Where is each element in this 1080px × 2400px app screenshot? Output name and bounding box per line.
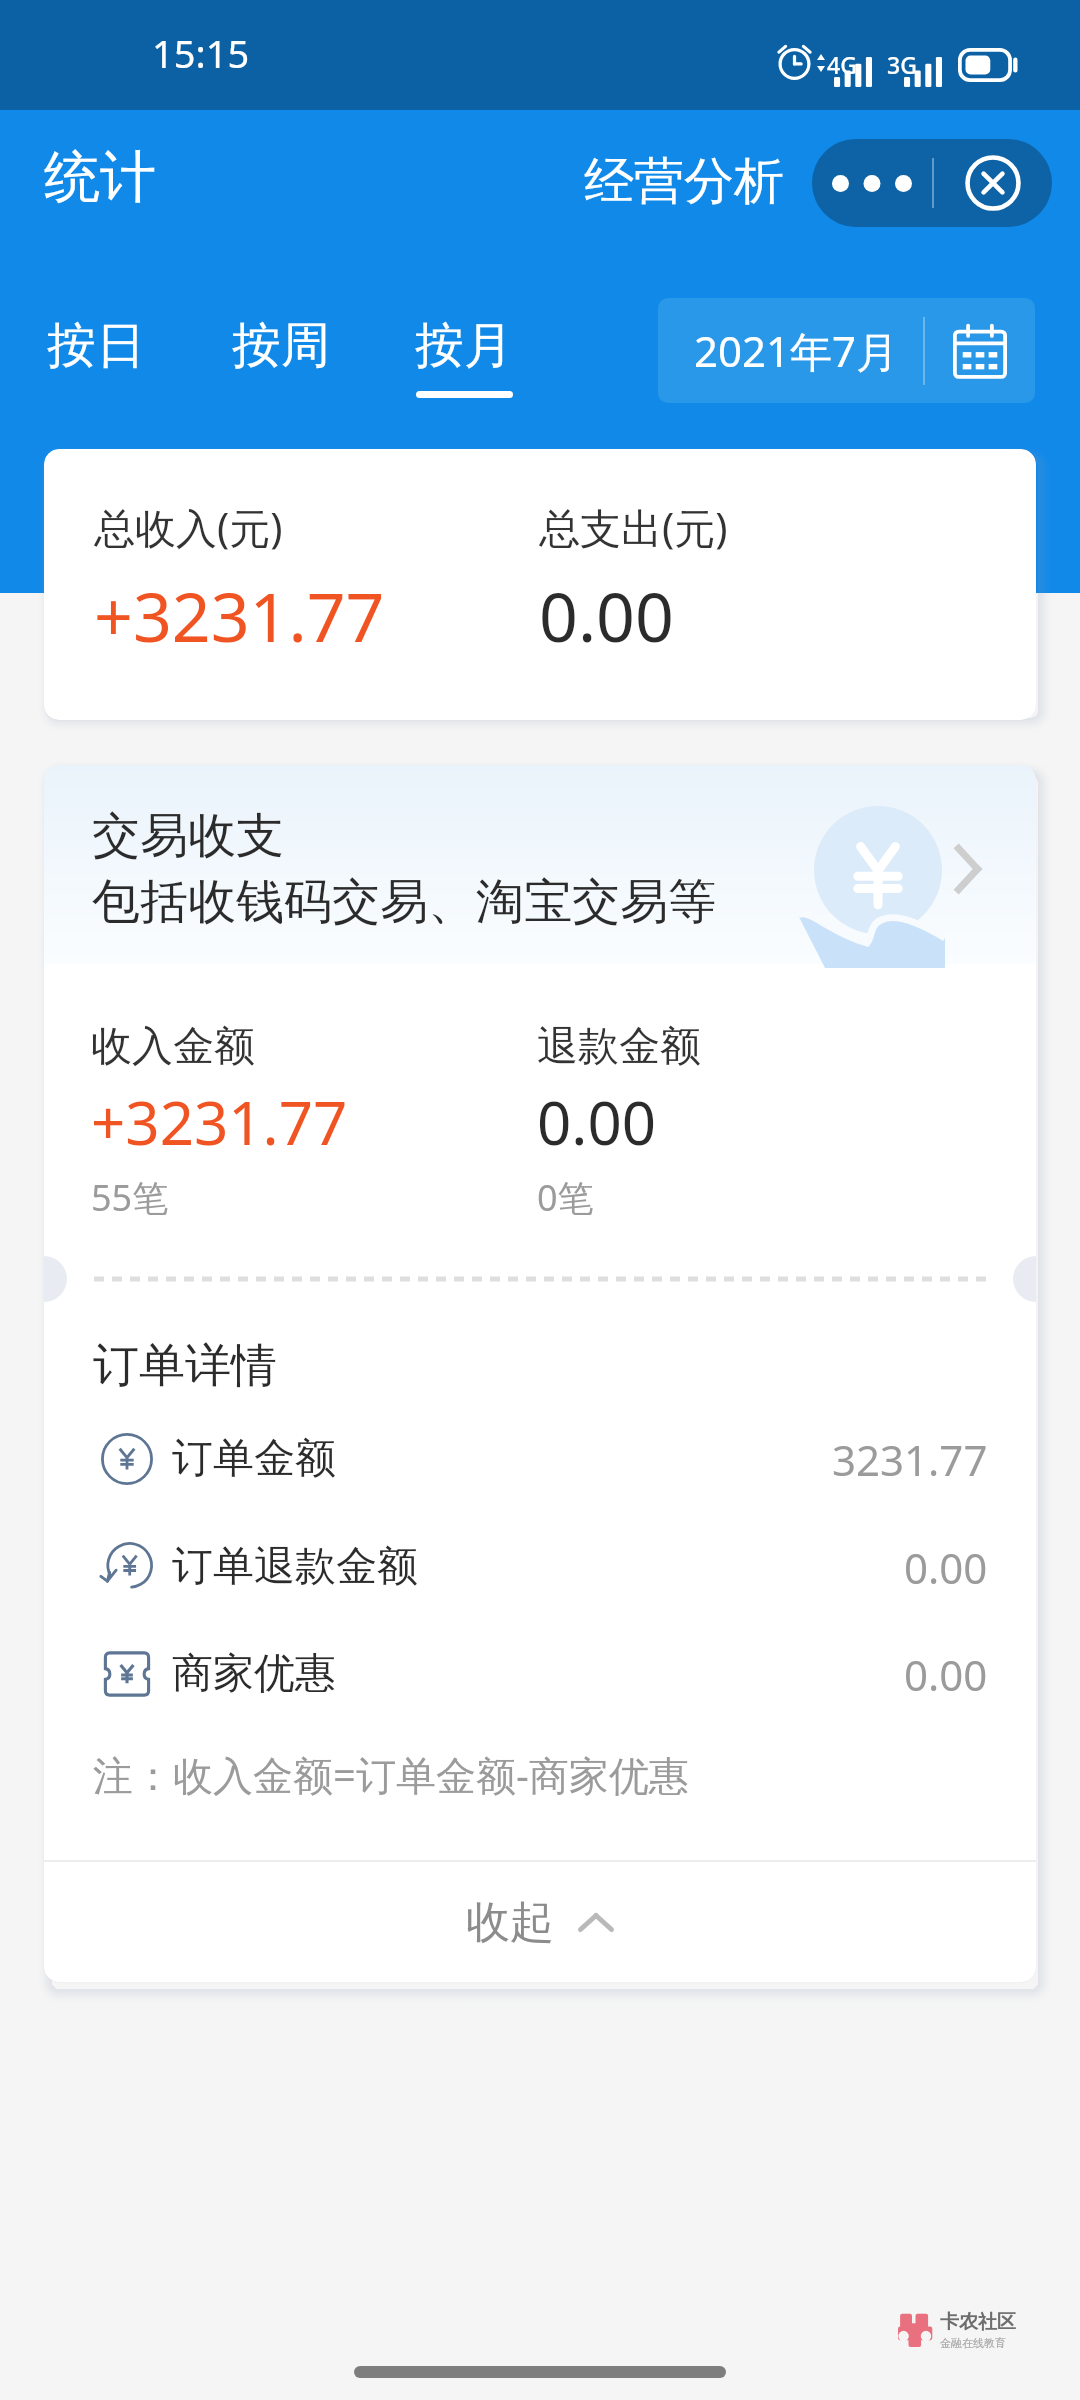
staticText: +3231.77	[91, 1081, 348, 1163]
staticText: 0.00	[904, 1539, 988, 1596]
button[interactable]: 收起	[44, 1862, 1036, 1982]
button[interactable]: 总收入(元)	[44, 449, 1036, 720]
button[interactable]: 交易收支	[44, 765, 1036, 964]
staticText: 按周	[232, 315, 330, 377]
button[interactable]: 订单退款金额	[44, 1513, 1036, 1621]
staticText: 包括收钱码交易、淘宝交易等	[92, 872, 716, 932]
staticText: 总支出(元)	[539, 499, 728, 555]
button[interactable]: 订单金额	[44, 1405, 1036, 1513]
other: Pick date	[953, 324, 1007, 378]
staticText: 按日	[47, 315, 145, 377]
staticText: 卡农社区	[940, 2310, 1016, 2334]
staticText: 按月	[415, 315, 513, 377]
staticText: 0.00	[537, 1081, 657, 1163]
button[interactable]: Close	[934, 139, 1052, 227]
staticText: 订单金额	[172, 1433, 336, 1485]
button[interactable]: More options	[812, 139, 932, 227]
staticText: 4G	[827, 49, 857, 80]
staticText: 订单退款金额	[172, 1541, 418, 1593]
staticText: 总收入(元)	[94, 499, 283, 555]
staticText: 0.00	[904, 1646, 988, 1703]
staticText: 0.00	[539, 569, 674, 662]
button[interactable]: 2021年7月	[658, 298, 1035, 403]
staticText: 收起	[466, 1895, 554, 1950]
staticText: 订单详情	[93, 1337, 277, 1395]
staticText: 商家优惠	[172, 1648, 336, 1700]
button[interactable]: 按月	[405, 315, 523, 398]
staticText: 2021年7月	[694, 322, 899, 379]
staticText: 统计	[44, 142, 156, 213]
staticText: 经营分析	[584, 150, 784, 213]
staticText: 金融在线教育	[940, 2336, 1006, 2350]
staticText: +3231.77	[94, 569, 385, 662]
staticText: 注：收入金额=订单金额-商家优惠	[93, 1747, 689, 1802]
button[interactable]: 按日	[37, 315, 155, 398]
staticText: 55笔	[91, 1173, 169, 1222]
button[interactable]: 商家优惠	[44, 1620, 1036, 1728]
staticText: 3G	[887, 49, 917, 80]
staticText: 交易收支	[92, 806, 284, 866]
staticText: 15:15	[152, 27, 250, 79]
staticText: 收入金额	[91, 1021, 255, 1073]
button[interactable]: 按周	[222, 315, 340, 398]
staticText: 0笔	[537, 1173, 594, 1222]
staticText: 退款金额	[537, 1021, 701, 1073]
staticText: 3231.77	[832, 1431, 988, 1488]
